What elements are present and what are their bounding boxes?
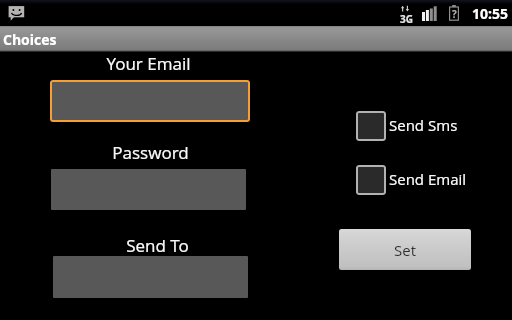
staticText: Send Sms — [389, 115, 458, 135]
button[interactable]: Your Email field — [50, 80, 250, 122]
staticText: 3G — [400, 12, 413, 26]
button[interactable]: Send Email — [356, 165, 467, 195]
other: New message notification — [8, 5, 25, 21]
staticText: Choices — [3, 30, 57, 49]
button[interactable]: Send Sms — [356, 111, 458, 141]
button[interactable]: Set — [339, 229, 471, 270]
staticText: Password — [112, 141, 189, 164]
staticText: 10:55 — [472, 4, 508, 23]
staticText: Set — [394, 240, 416, 260]
staticText: ? — [452, 7, 457, 21]
staticText: Send To — [126, 234, 189, 257]
staticText: Your Email — [106, 52, 191, 75]
staticText: Send Email — [389, 169, 467, 189]
